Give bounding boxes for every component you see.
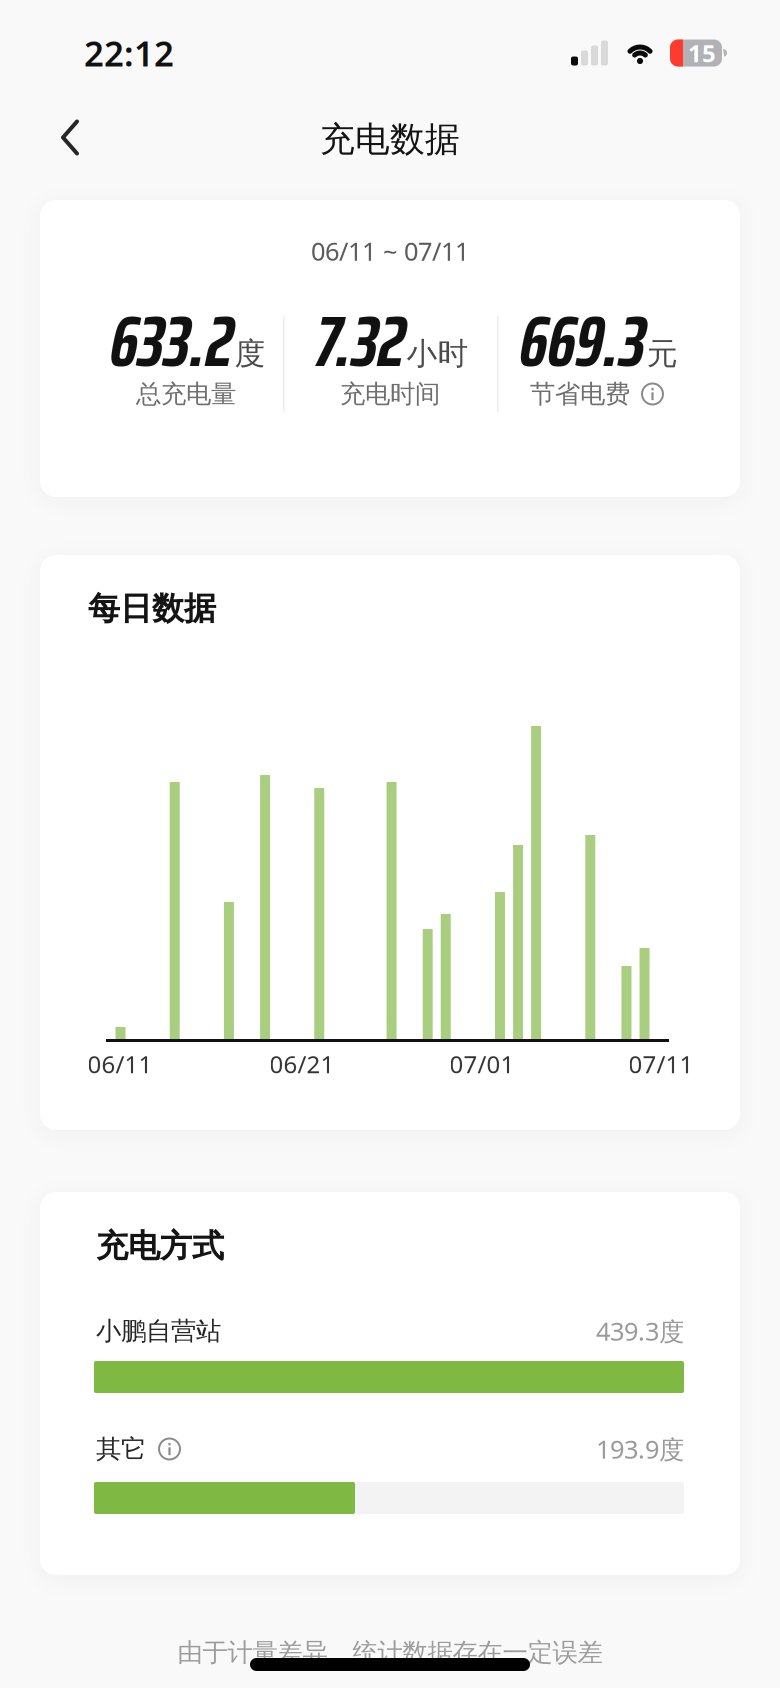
staticText: 每日数据 (88, 589, 216, 628)
staticText: 节省电费 (530, 378, 630, 409)
staticText: 小时 (406, 335, 468, 373)
staticText: 633.2 (106, 284, 229, 398)
staticText: 充电数据 (320, 118, 460, 161)
staticText: 07/01 (449, 1048, 514, 1080)
staticText: 22:12 (84, 30, 174, 76)
staticText: 669.3 (516, 284, 642, 398)
staticText: 439.3度 (596, 1314, 684, 1348)
button[interactable] (0, 91, 80, 183)
staticText: 06/21 (269, 1048, 334, 1080)
button[interactable] (641, 382, 664, 405)
staticText: 小鹏自营站 (96, 1315, 221, 1346)
staticText: 7.32 (311, 284, 401, 398)
staticText: 充电时间 (340, 378, 440, 409)
staticText: 度 (234, 335, 265, 373)
staticText: 其它 (96, 1433, 146, 1464)
staticText: 总充电量 (136, 378, 236, 409)
staticText: 07/11 (628, 1048, 693, 1080)
staticText: 充电方式 (96, 1226, 224, 1266)
staticText: 06/11 (87, 1048, 152, 1080)
button[interactable] (146, 1437, 181, 1460)
staticText: 06/11 ~ 07/11 (311, 234, 469, 268)
staticText: 15 (688, 37, 716, 69)
staticText: 元 (647, 335, 678, 373)
staticText: 193.9度 (596, 1432, 684, 1466)
staticText: 由于计量差异，统计数据存在一定误差 (177, 1637, 602, 1668)
